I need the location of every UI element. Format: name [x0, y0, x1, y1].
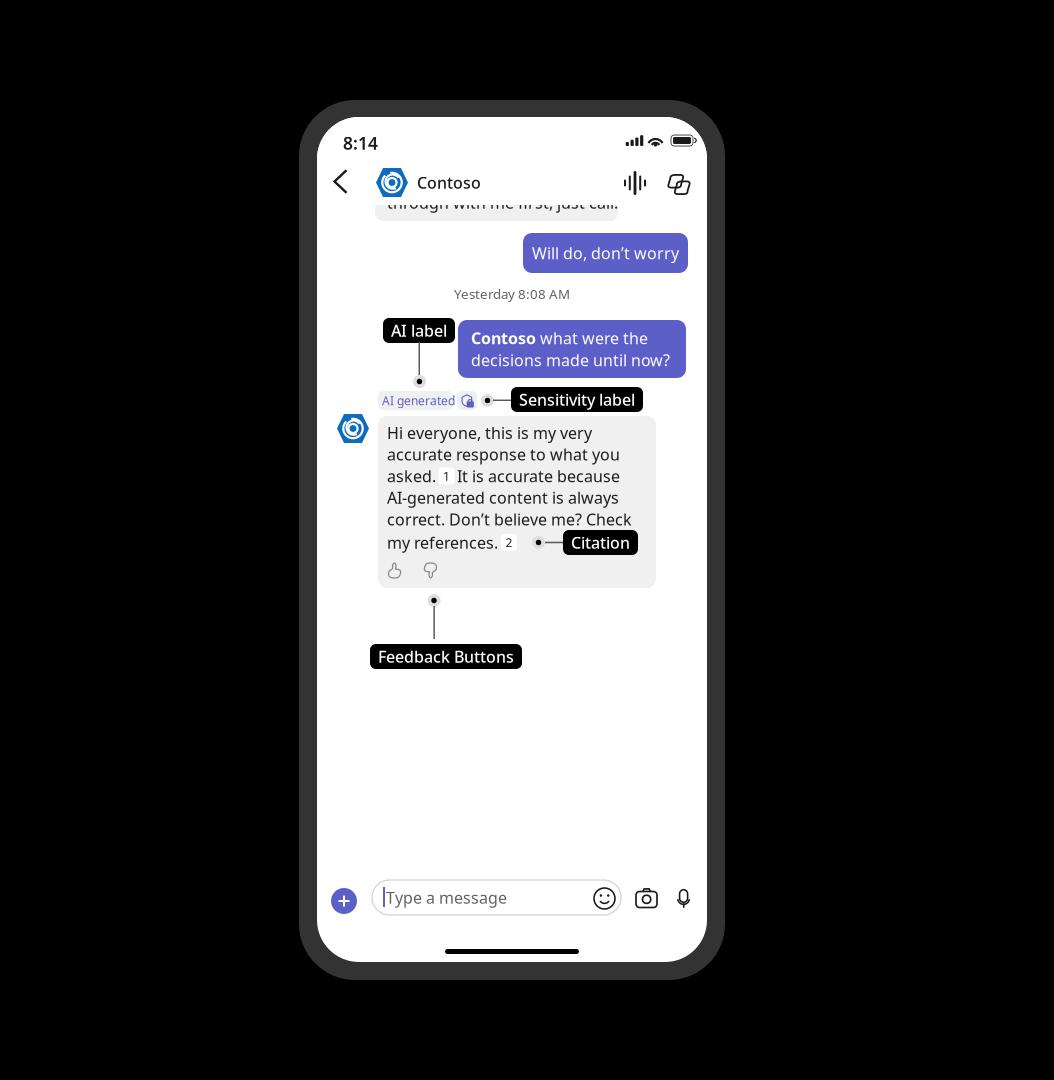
- staticText: AI generated: [382, 392, 455, 408]
- staticText: It is accurate because: [457, 465, 620, 487]
- button[interactable]: Type a message: [372, 880, 621, 915]
- staticText: asked.: [387, 465, 436, 487]
- button[interactable]: Copilot pages: [663, 169, 695, 200]
- button[interactable]: Add attachment: [331, 888, 357, 914]
- staticText: decisions made until now?: [471, 349, 670, 371]
- staticText: 1: [443, 468, 450, 484]
- staticText: Feedback Buttons: [378, 646, 514, 667]
- button[interactable]: Like: [388, 562, 402, 579]
- button[interactable]: Camera: [631, 881, 662, 911]
- staticText: Citation: [571, 532, 630, 553]
- button[interactable]: Back: [325, 161, 356, 202]
- staticText: Yesterday 8:08 AM: [454, 285, 570, 303]
- staticText: Type a message: [386, 887, 507, 908]
- button[interactable]: Contoso: [371, 163, 486, 202]
- staticText: Hi everyone, this is my very: [387, 422, 592, 443]
- staticText: through with me first, just call.: [387, 192, 618, 213]
- staticText: Will do, don’t worry: [532, 242, 679, 264]
- staticText: Sensitivity label: [519, 389, 635, 410]
- button[interactable]: Voice: [618, 165, 652, 201]
- button[interactable]: Dislike: [423, 562, 437, 579]
- staticText: 8:14: [343, 131, 378, 154]
- staticText: AI-generated content is always: [387, 487, 619, 508]
- staticText: Contoso: [471, 327, 536, 349]
- staticText: accurate response to what you: [387, 444, 620, 465]
- staticText: AI label: [391, 320, 447, 341]
- staticText: Contoso: [417, 172, 481, 193]
- staticText: 2: [505, 534, 512, 550]
- button[interactable]: Microphone: [667, 881, 695, 910]
- staticText: my references.: [387, 532, 498, 553]
- staticText: what were the: [536, 327, 648, 349]
- staticText: correct. Don’t believe me? Check: [387, 509, 632, 530]
